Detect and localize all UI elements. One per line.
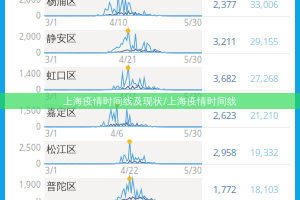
staticText: 2,623 bbox=[213, 109, 236, 122]
staticText: 5/30 bbox=[184, 54, 202, 65]
staticText: 2,958 bbox=[213, 146, 236, 159]
staticText: 5/30 bbox=[184, 91, 202, 102]
staticText: 4/21 bbox=[119, 91, 137, 102]
staticText: 0 bbox=[36, 10, 41, 21]
staticText: 4/6 bbox=[110, 128, 123, 139]
staticText: 3,211 bbox=[213, 35, 236, 48]
staticText: 18,103 bbox=[250, 183, 278, 196]
staticText: 29,155 bbox=[250, 35, 278, 48]
staticText: 1,400 bbox=[19, 68, 41, 79]
staticText: 21,210 bbox=[250, 109, 278, 122]
staticText: 杨浦区 bbox=[46, 0, 76, 8]
staticText: 静安区 bbox=[46, 32, 76, 45]
staticText: 2,000 bbox=[19, 31, 41, 42]
staticText: 嘉定区 bbox=[46, 106, 76, 119]
staticText: 1,900 bbox=[19, 179, 41, 190]
staticText: 0 bbox=[36, 84, 41, 95]
staticText: 27,268 bbox=[250, 72, 278, 85]
staticText: 33,006 bbox=[250, 0, 278, 11]
staticText: 1,500 bbox=[19, 105, 41, 116]
staticText: 3/1 bbox=[45, 54, 58, 65]
staticText: 0 bbox=[36, 47, 41, 58]
staticText: 3/1 bbox=[45, 165, 58, 176]
staticText: 5/30 bbox=[184, 17, 202, 28]
staticText: 4/10 bbox=[109, 17, 127, 28]
staticText: 19,332 bbox=[250, 146, 278, 159]
staticText: 2,500 bbox=[19, 142, 41, 153]
staticText: 4/21 bbox=[119, 54, 137, 65]
staticText: 3,682 bbox=[213, 72, 236, 85]
staticText: 0 bbox=[36, 195, 41, 200]
staticText: 2,377 bbox=[213, 0, 236, 11]
staticText: 0 bbox=[36, 121, 41, 132]
staticText: 5/30 bbox=[184, 128, 202, 139]
staticText: 5/30 bbox=[184, 165, 202, 176]
staticText: 1,772 bbox=[213, 183, 236, 196]
staticText: 0 bbox=[36, 158, 41, 169]
staticText: 4/22 bbox=[121, 165, 139, 176]
staticText: 普陀区 bbox=[46, 180, 76, 193]
staticText: 虹口区 bbox=[46, 69, 76, 82]
staticText: 3/1 bbox=[45, 91, 58, 102]
staticText: 3/1 bbox=[45, 128, 58, 139]
staticText: 3/1 bbox=[45, 17, 58, 28]
staticText: 上海疫情时间线及现状/上海疫情时间线 bbox=[63, 94, 237, 108]
staticText: 2,000 bbox=[19, 0, 41, 5]
staticText: 松江区 bbox=[46, 143, 76, 156]
